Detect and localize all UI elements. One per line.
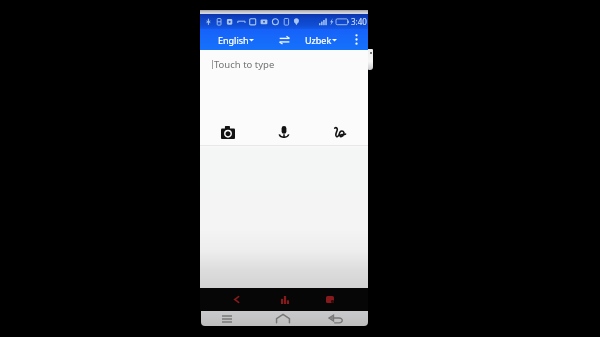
button[interactable]: More options	[347, 29, 366, 50]
button[interactable]: Touch to type	[200, 50, 368, 121]
button[interactable]: Voice input	[273, 121, 295, 143]
staticText: Touch to type	[214, 58, 275, 71]
button[interactable]: Swap languages	[276, 29, 292, 50]
button[interactable]: Home	[273, 311, 293, 326]
button[interactable]: Back	[326, 311, 346, 326]
button[interactable]: Recent apps	[320, 288, 340, 311]
button[interactable]: Camera input	[217, 121, 239, 143]
staticText: Uzbek	[305, 34, 332, 46]
staticText: English	[218, 34, 249, 46]
button[interactable]: Back	[226, 288, 246, 311]
button[interactable]: English	[218, 32, 254, 48]
staticText: 3:40	[351, 16, 367, 27]
button[interactable]: Handwriting input	[329, 121, 351, 143]
button[interactable]: Uzbek	[305, 32, 337, 48]
button[interactable]: Home	[275, 288, 295, 311]
button[interactable]: Menu	[217, 311, 237, 326]
